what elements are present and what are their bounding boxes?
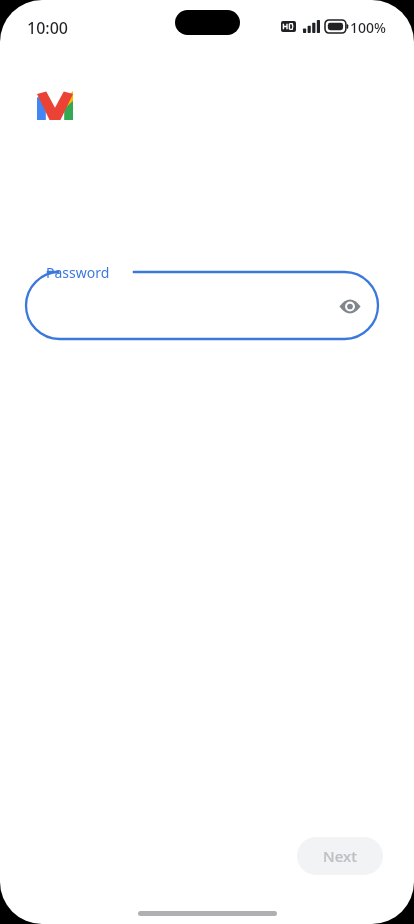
button[interactable]: Next — [297, 837, 383, 875]
staticText: 100% — [350, 18, 386, 34]
staticText: Next — [323, 846, 357, 866]
button[interactable]: Password — [26, 272, 378, 339]
button[interactable]: Show password — [330, 286, 370, 326]
staticText: 10:00 — [27, 17, 68, 39]
staticText: Password — [46, 263, 110, 282]
